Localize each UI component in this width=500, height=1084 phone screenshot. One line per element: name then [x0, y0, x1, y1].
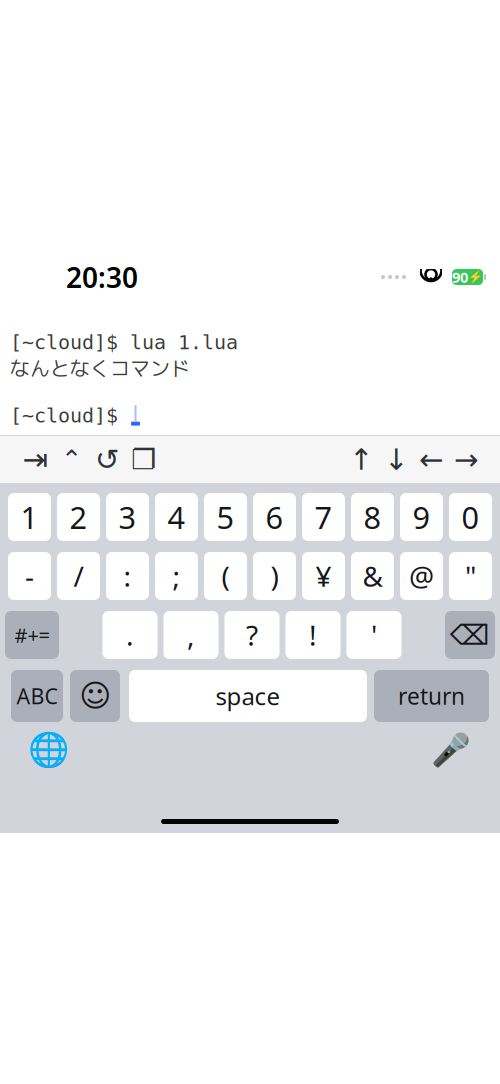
staticText: - [25, 557, 34, 595]
button[interactable]: ! [285, 611, 340, 659]
button[interactable]: Undo [91, 441, 124, 477]
button[interactable]: #+= [5, 611, 59, 659]
staticText: ) [270, 557, 278, 595]
staticText: 6 [265, 497, 283, 537]
button[interactable]: , [163, 611, 218, 659]
staticText: 20:30 [66, 258, 138, 296]
button[interactable]: Control [55, 441, 88, 477]
staticText: " [465, 557, 476, 595]
staticText: → [454, 443, 479, 476]
button[interactable]: Emoji [70, 670, 120, 722]
button[interactable]: ; [155, 552, 198, 600]
button[interactable]: @ [400, 552, 443, 600]
staticText: space [215, 680, 280, 712]
staticText: 5 [216, 497, 234, 537]
button[interactable]: " [449, 552, 492, 600]
button[interactable]: Next keyboard [28, 729, 70, 771]
button[interactable]: / [57, 552, 100, 600]
button[interactable]: Move left [415, 441, 448, 477]
button[interactable]: & [351, 552, 394, 600]
button[interactable]: 1 [8, 493, 51, 541]
staticText: 7 [314, 497, 332, 537]
staticText: ! [309, 616, 317, 654]
staticText: : [123, 557, 131, 595]
staticText: 🌐 [28, 731, 70, 769]
button[interactable]: 8 [351, 493, 394, 541]
staticText: なんとなくコマンド [10, 357, 190, 381]
staticText: 0 [461, 497, 479, 537]
button[interactable]: 7 [302, 493, 345, 541]
staticText: ¥ [315, 557, 331, 595]
staticText: ← [419, 443, 444, 476]
staticText: 4 [167, 497, 185, 537]
button[interactable]: ' [346, 611, 401, 659]
button[interactable]: Scroll down [380, 441, 413, 477]
button[interactable]: ¥ [302, 552, 345, 600]
button[interactable]: ? [224, 611, 279, 659]
staticText: ☺ [79, 679, 111, 713]
staticText: . [126, 616, 134, 654]
staticText: 8 [363, 497, 381, 537]
staticText: ⚡ [468, 270, 483, 284]
staticText: return [398, 681, 465, 711]
button[interactable]: 0 [449, 493, 492, 541]
button[interactable]: . [102, 611, 157, 659]
button[interactable]: Delete [445, 611, 495, 659]
staticText: 9 [412, 497, 430, 537]
button[interactable]: - [8, 552, 51, 600]
staticText: 3 [118, 497, 136, 537]
button[interactable]: 3 [106, 493, 149, 541]
button[interactable]: return [374, 670, 489, 722]
staticText: @ [409, 557, 434, 595]
button[interactable]: : [106, 552, 149, 600]
button[interactable]: ) [253, 552, 296, 600]
staticText: #+= [14, 622, 49, 648]
staticText: 90 [452, 267, 468, 287]
staticText: / [73, 557, 83, 595]
staticText: ( [221, 557, 229, 595]
button[interactable]: Paste [127, 441, 160, 477]
button[interactable]: Move right [450, 441, 483, 477]
button[interactable]: ABC [11, 670, 63, 722]
staticText: [~cloud]$ lua 1.lua [10, 331, 238, 354]
staticText: 2 [69, 497, 87, 537]
button[interactable]: 6 [253, 493, 296, 541]
staticText: 1 [20, 497, 38, 537]
button[interactable]: Tab [19, 441, 52, 477]
staticText: ⌃ [61, 445, 82, 474]
staticText: ↓ [384, 443, 409, 476]
staticText: & [362, 557, 382, 595]
button[interactable]: 2 [57, 493, 100, 541]
staticText: ? [246, 616, 258, 654]
staticText: ' [371, 616, 377, 654]
button[interactable]: space [129, 670, 367, 722]
staticText: ; [172, 557, 180, 595]
button[interactable]: Scroll up [345, 441, 378, 477]
button[interactable]: ( [204, 552, 247, 600]
staticText: ❐ [131, 444, 156, 475]
button[interactable]: 4 [155, 493, 198, 541]
staticText: [~cloud]$ [10, 404, 130, 427]
button[interactable]: 5 [204, 493, 247, 541]
staticText: ⌫ [450, 619, 490, 651]
staticText: , [187, 616, 195, 654]
staticText: 🎤 [431, 732, 471, 768]
staticText: ↑ [349, 443, 374, 476]
staticText: ⇥ [22, 442, 48, 477]
staticText: ↺ [95, 443, 120, 476]
staticText: ABC [16, 682, 57, 710]
button[interactable]: 9 [400, 493, 443, 541]
button[interactable]: Dictation [430, 729, 472, 771]
